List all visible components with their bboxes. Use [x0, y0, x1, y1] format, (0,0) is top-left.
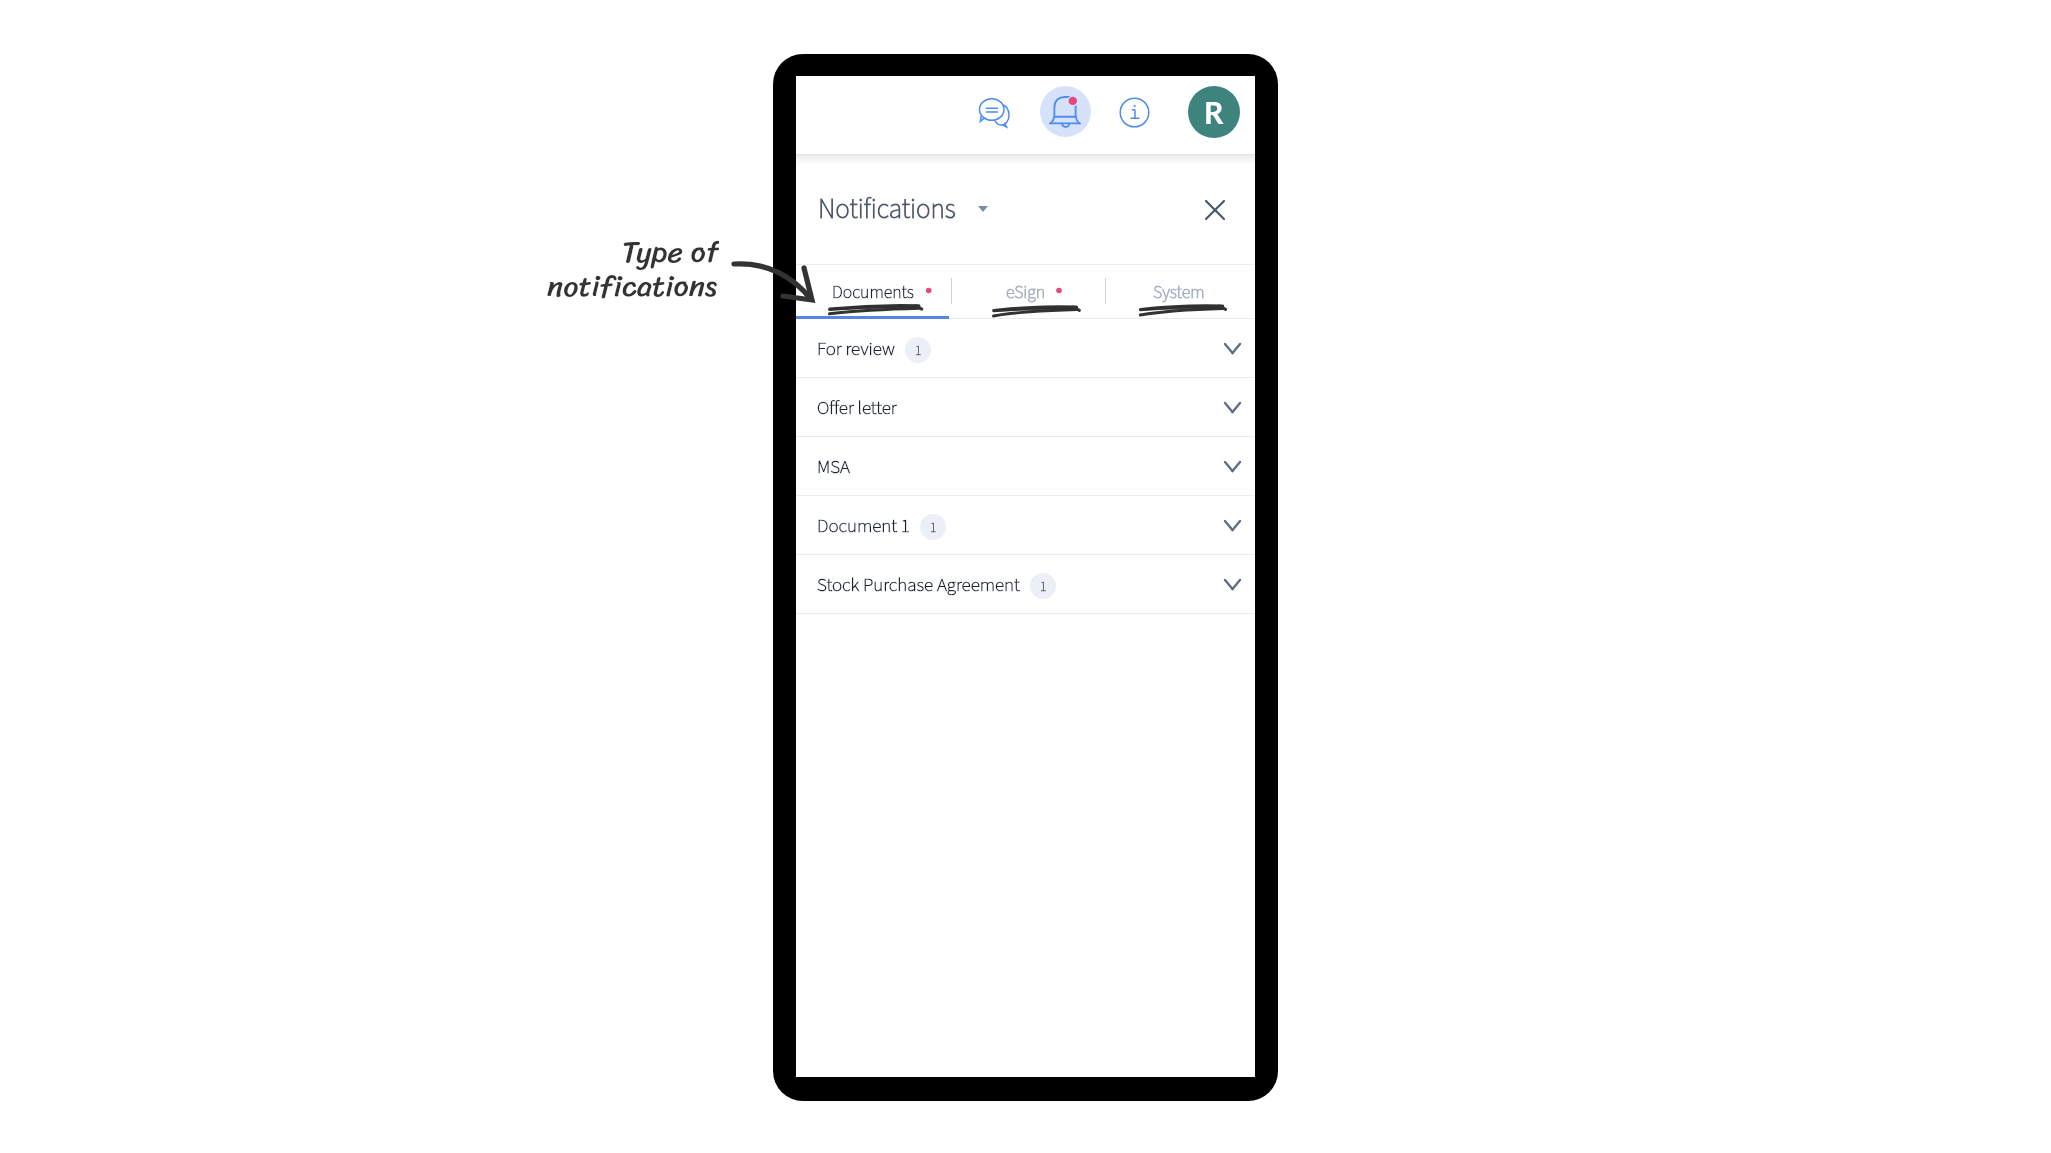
staticText: 1 [1040, 577, 1047, 596]
button[interactable]: Close [1199, 194, 1231, 226]
button[interactable]: System [1102, 265, 1255, 318]
staticText: notifications [547, 259, 718, 305]
staticText: 1 [930, 518, 937, 537]
staticText: Notifications [818, 190, 956, 229]
button[interactable]: MSA [796, 437, 1255, 496]
button[interactable]: Notifications [1040, 86, 1091, 137]
staticText: For review [817, 336, 895, 363]
button[interactable]: Stock Purchase Agreement [796, 555, 1255, 614]
staticText: System [1153, 280, 1205, 305]
staticText: MSA [817, 454, 850, 481]
staticText: Type of [622, 225, 719, 271]
button[interactable]: eSign [949, 265, 1102, 318]
button[interactable]: Offer letter [796, 378, 1255, 437]
button[interactable]: Documents [796, 265, 949, 318]
staticText: Offer letter [817, 395, 897, 422]
button[interactable]: Messages [972, 90, 1016, 134]
staticText: eSign [1006, 280, 1046, 305]
staticText: Document 1 [817, 513, 910, 540]
button[interactable]: Document 1 [796, 496, 1255, 555]
button[interactable]: For review [796, 319, 1255, 378]
staticText: Documents [832, 280, 914, 305]
button[interactable]: Notifications [818, 187, 992, 231]
button[interactable]: R [1188, 86, 1240, 138]
button[interactable]: Information [1114, 92, 1154, 132]
staticText: Stock Purchase Agreement [817, 572, 1020, 599]
staticText: 1 [915, 341, 922, 360]
staticText: R [1204, 94, 1224, 130]
